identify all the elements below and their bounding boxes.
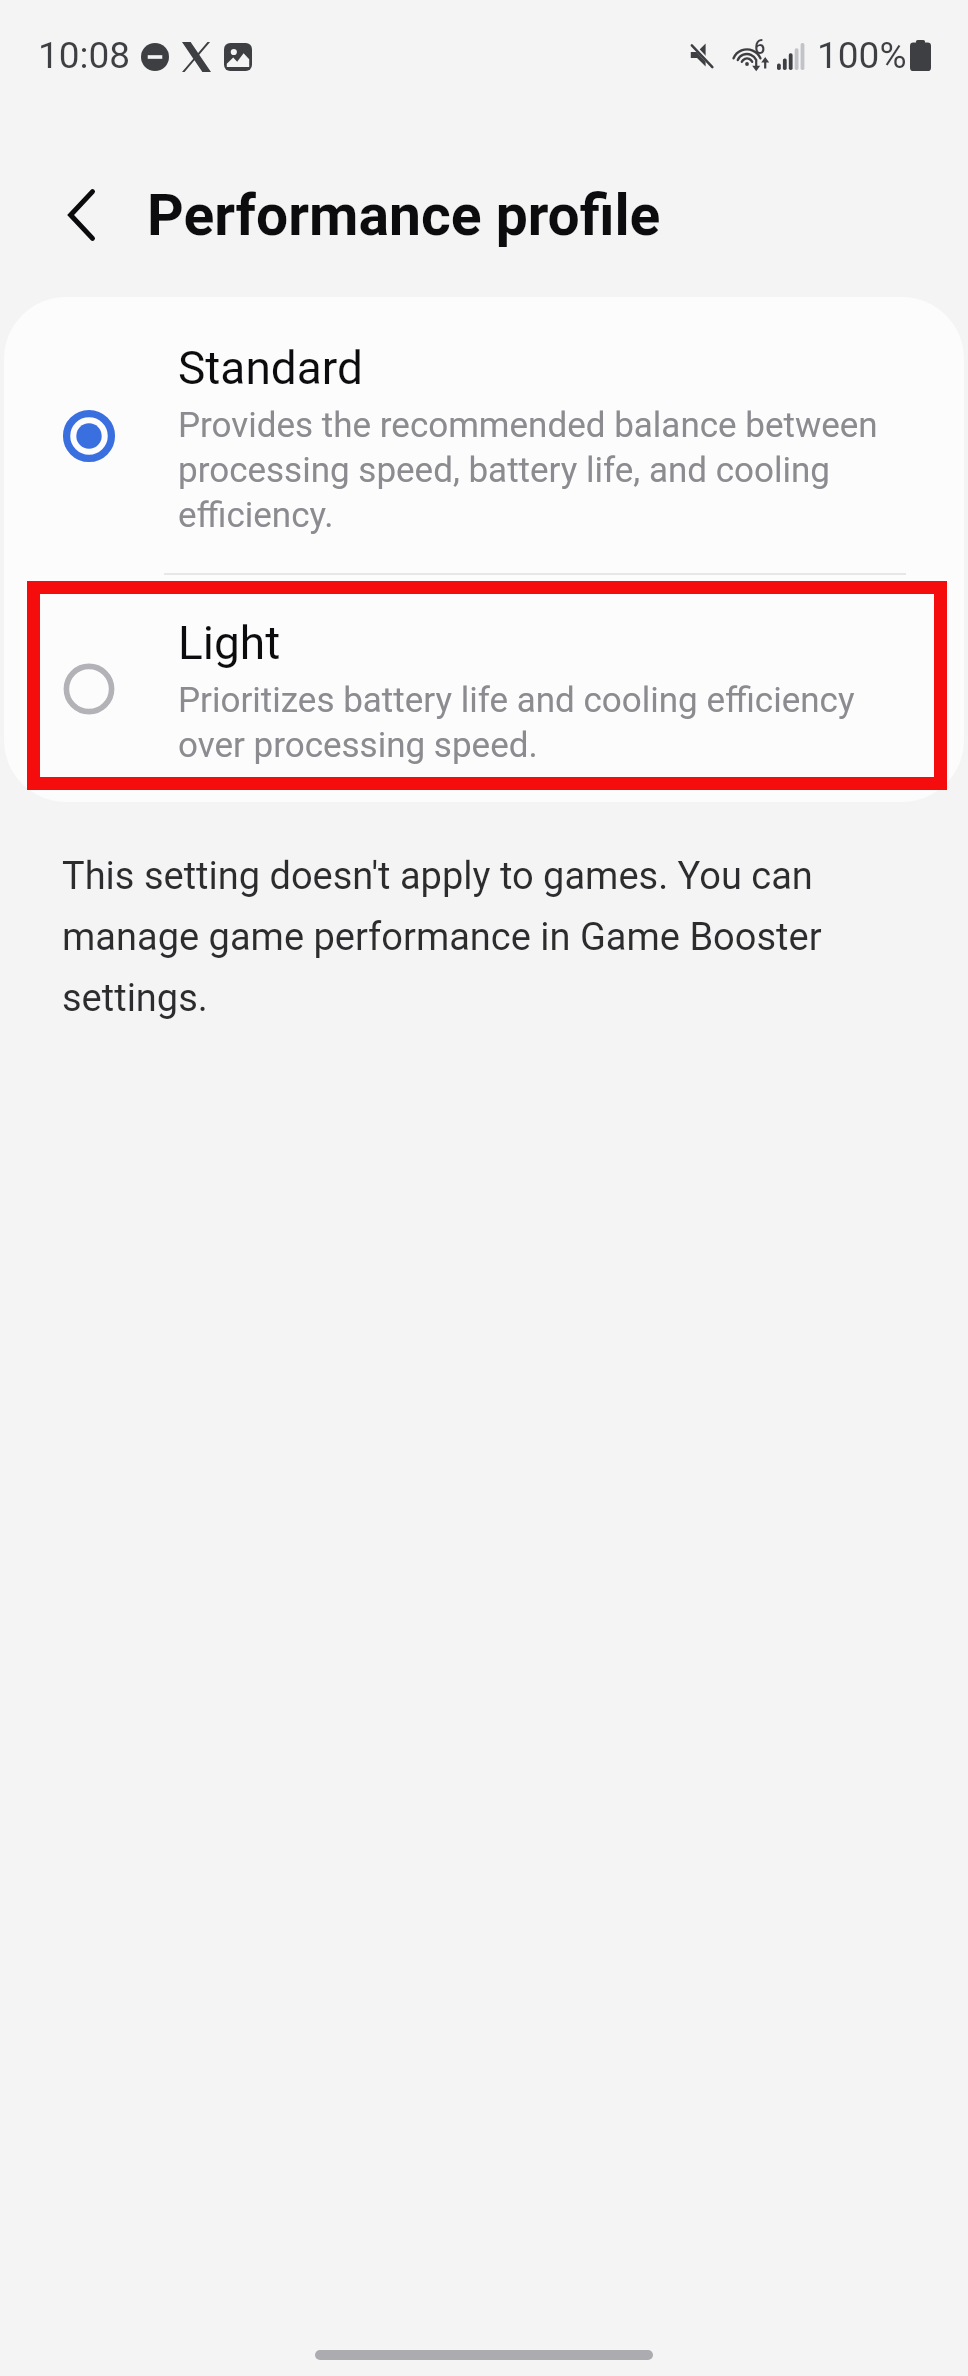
staticText: 100% bbox=[817, 34, 907, 77]
staticText: Performance profile bbox=[147, 182, 661, 249]
staticText: Light bbox=[178, 615, 281, 671]
button[interactable]: Back bbox=[22, 134, 142, 254]
button[interactable]: Standard bbox=[4, 297, 964, 574]
staticText: This setting doesn't apply to games. You… bbox=[62, 841, 852, 1024]
staticText: 10:08 bbox=[38, 34, 131, 77]
button[interactable]: Light bbox=[4, 575, 964, 802]
staticText: 6 bbox=[754, 35, 766, 58]
staticText: Standard bbox=[178, 340, 363, 396]
staticText: Prioritizes battery life and cooling eff… bbox=[178, 676, 898, 766]
staticText: Provides the recommended balance between… bbox=[178, 401, 898, 536]
